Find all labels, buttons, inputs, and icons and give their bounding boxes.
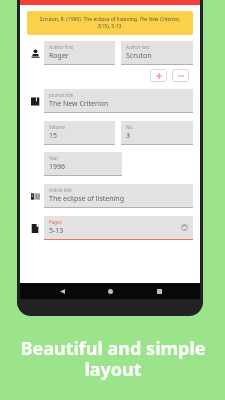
staticText: Article title: [49, 187, 72, 193]
staticText: No.: [126, 124, 134, 130]
staticText: Scruton: [126, 51, 152, 61]
staticText: Beautiful and simple layout: [20, 336, 206, 382]
button[interactable]: Scruton, R. (1996). The eclipse of liste…: [27, 11, 193, 35]
button[interactable]: Year: [44, 152, 122, 176]
button[interactable]: Author last: [121, 41, 193, 65]
staticText: Scruton, R. (1996). The eclipse of liste…: [35, 16, 185, 30]
staticText: Pages: [49, 219, 62, 225]
button[interactable]: Pages: [44, 216, 193, 240]
button[interactable]: Add author: [150, 69, 167, 82]
button[interactable]: Help: [181, 224, 188, 231]
button[interactable]: Author first: [44, 41, 115, 65]
staticText: 3: [126, 131, 131, 141]
button[interactable]: Remove author: [172, 69, 189, 82]
staticText: 1996: [49, 162, 66, 172]
button[interactable]: Back: [55, 284, 69, 298]
staticText: Journal title: [49, 92, 74, 98]
button[interactable]: Article title: [44, 184, 193, 208]
button[interactable]: Journal title: [44, 89, 193, 113]
staticText: Volume: [49, 124, 66, 130]
button[interactable]: No.: [121, 121, 193, 145]
staticText: Author first: [49, 44, 74, 50]
staticText: Year: [49, 155, 59, 161]
button[interactable]: Home: [103, 284, 117, 298]
staticText: The New Criterion: [49, 99, 109, 109]
staticText: The eclipse of listening: [49, 194, 124, 204]
button[interactable]: Volume: [44, 121, 115, 145]
staticText: Roger: [49, 51, 69, 61]
button[interactable]: Recent apps: [152, 284, 166, 298]
staticText: Author last: [126, 44, 150, 50]
staticText: 5-13: [49, 226, 64, 236]
staticText: 15: [49, 131, 58, 141]
